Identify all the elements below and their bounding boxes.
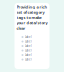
staticText: Label xyxy=(25,40,32,43)
staticText: Label xyxy=(25,49,32,52)
staticText: Label xyxy=(25,58,32,61)
staticText: Label xyxy=(25,35,32,39)
staticText: Providing a rich set of category tags to… xyxy=(16,4,47,31)
staticText: Label xyxy=(25,44,32,48)
staticText: Label xyxy=(25,53,32,57)
